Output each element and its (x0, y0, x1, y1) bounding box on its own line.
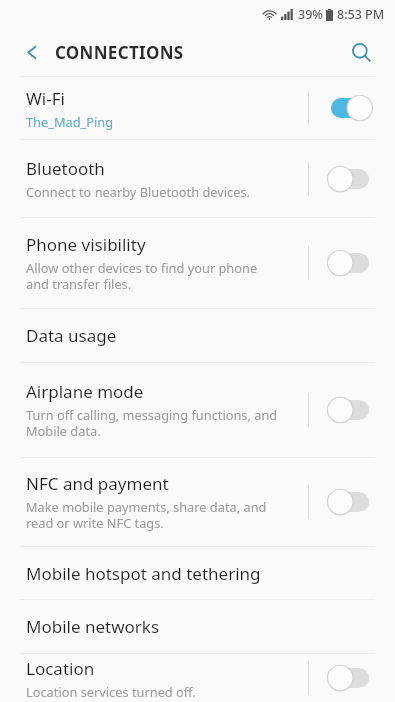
staticText: Phone visibility (26, 233, 146, 256)
button[interactable]: Location toggle (323, 656, 377, 700)
staticText: Mobile networks (26, 615, 160, 638)
button[interactable]: Mobile hotspot and tethering (0, 547, 395, 599)
staticText: Mobile hotspot and tethering (26, 562, 261, 585)
button[interactable]: Location (0, 654, 395, 702)
staticText: Bluetooth (26, 157, 105, 180)
button[interactable]: Bluetooth toggle (323, 157, 377, 201)
button[interactable]: NFC and payment (0, 458, 395, 546)
staticText: Allow other devices to find your phone a… (26, 259, 258, 293)
button[interactable]: Airplane mode (0, 363, 395, 457)
staticText: 39% (298, 6, 323, 23)
staticText: Location (26, 657, 95, 680)
staticText: Make mobile payments, share data, and re… (26, 498, 267, 532)
staticText: Data usage (26, 324, 117, 347)
button[interactable]: Data usage (0, 309, 395, 362)
staticText: 8:53 PM (337, 6, 385, 23)
button[interactable]: Wi-Fi (0, 77, 395, 139)
button[interactable]: Search (341, 32, 381, 72)
staticText: Wi-Fi (26, 87, 65, 110)
staticText: NFC and payment (26, 472, 169, 495)
button[interactable]: Bluetooth (0, 140, 395, 217)
staticText: Connect to nearby Bluetooth devices. (26, 183, 250, 200)
button[interactable]: Mobile networks (0, 600, 395, 653)
button[interactable]: Airplane mode toggle (323, 388, 377, 432)
staticText: Airplane mode (26, 380, 144, 403)
staticText: The_Mad_Ping (26, 113, 114, 130)
button[interactable]: Phone visibility toggle (323, 241, 377, 285)
button[interactable]: NFC and payment toggle (323, 480, 377, 524)
staticText: Location services turned off. (26, 683, 196, 700)
staticText: Turn off calling, messaging functions, a… (26, 406, 278, 440)
button[interactable]: Phone visibility (0, 218, 395, 308)
button[interactable]: Wi-Fi toggle (323, 86, 377, 130)
staticText: CONNECTIONS (55, 41, 184, 64)
button[interactable]: Back (14, 34, 50, 70)
